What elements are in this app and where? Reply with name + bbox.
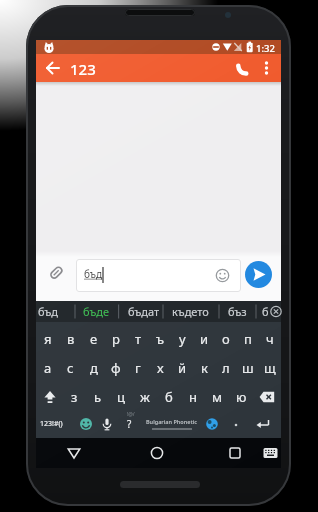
button[interactable]: [262, 443, 280, 463]
button[interactable]: р: [105, 324, 127, 353]
staticText: д: [90, 359, 98, 377]
button[interactable]: л: [215, 353, 237, 382]
button[interactable]: ю: [229, 382, 253, 411]
button[interactable]: а: [36, 353, 59, 382]
button[interactable]: [74, 411, 98, 437]
button[interactable]: ?: [117, 411, 141, 437]
staticText: п: [244, 330, 252, 348]
staticText: ?: [127, 417, 132, 431]
staticText: бъз: [228, 304, 247, 319]
staticText: ч: [266, 330, 274, 348]
staticText: ш: [242, 359, 254, 377]
staticText: я: [44, 330, 52, 348]
staticText: бъд: [38, 304, 58, 319]
button[interactable]: бъд: [34, 301, 61, 322]
staticText: ж: [140, 388, 150, 406]
staticText: е: [90, 330, 98, 348]
staticText: з: [71, 388, 78, 406]
button[interactable]: [255, 56, 277, 80]
staticText: ф: [111, 359, 121, 377]
button[interactable]: [223, 441, 247, 465]
button[interactable]: ш: [237, 353, 259, 382]
button[interactable]: е: [82, 324, 105, 353]
staticText: а: [44, 359, 52, 377]
staticText: л: [222, 359, 230, 377]
button[interactable]: [96, 411, 118, 437]
button[interactable]: х: [149, 353, 171, 382]
button[interactable]: и: [193, 324, 215, 353]
staticText: 123!#(): [40, 419, 63, 429]
staticText: г: [135, 359, 141, 377]
staticText: и: [200, 330, 209, 348]
button[interactable]: г: [127, 353, 149, 382]
button[interactable]: [41, 56, 65, 80]
button[interactable]: ъ: [149, 324, 171, 353]
button[interactable]: д: [82, 353, 105, 382]
button[interactable]: 123!#(): [36, 411, 66, 437]
staticText: б: [165, 388, 173, 406]
button[interactable]: [226, 411, 246, 437]
staticText: където: [172, 304, 209, 319]
staticText: бъд: [84, 267, 103, 281]
staticText: р: [112, 330, 120, 348]
staticText: ц: [117, 388, 125, 406]
button[interactable]: бъде: [79, 301, 113, 322]
button[interactable]: [253, 382, 281, 411]
button[interactable]: ж: [133, 382, 157, 411]
staticText: т: [135, 330, 142, 348]
button[interactable]: м: [205, 382, 229, 411]
staticText: х: [157, 359, 164, 377]
staticText: м: [212, 388, 222, 406]
button[interactable]: у: [171, 324, 193, 353]
button[interactable]: [46, 263, 66, 283]
button[interactable]: бъд: [76, 259, 241, 292]
button[interactable]: н: [181, 382, 205, 411]
staticText: о: [222, 330, 230, 348]
button[interactable]: ь: [86, 382, 109, 411]
button[interactable]: бъз: [224, 301, 251, 322]
button[interactable]: [200, 411, 224, 437]
staticText: ю: [236, 388, 247, 406]
staticText: й: [178, 359, 187, 377]
staticText: с: [67, 359, 74, 377]
button[interactable]: [250, 411, 276, 437]
button[interactable]: където: [167, 301, 213, 322]
button[interactable]: ч: [259, 324, 281, 353]
button[interactable]: я: [36, 324, 59, 353]
staticText: ъ: [156, 330, 165, 348]
button[interactable]: [62, 441, 86, 465]
staticText: 123: [70, 59, 96, 79]
staticText: ь: [94, 388, 102, 406]
staticText: Bulgarian Phonetic: [146, 418, 198, 425]
button[interactable]: [145, 441, 169, 465]
button[interactable]: щ: [259, 353, 281, 382]
staticText: б: [262, 304, 269, 319]
button[interactable]: [36, 382, 63, 411]
button[interactable]: бъдат: [124, 301, 164, 322]
button[interactable]: к: [193, 353, 215, 382]
button[interactable]: п: [237, 324, 259, 353]
button[interactable]: с: [59, 353, 82, 382]
staticText: н: [189, 388, 197, 406]
button[interactable]: з: [63, 382, 86, 411]
staticText: 1:32: [256, 42, 275, 55]
button[interactable]: [230, 56, 254, 80]
staticText: бъде: [83, 304, 110, 319]
button[interactable]: Bulgarian Phonetic: [141, 411, 202, 437]
button[interactable]: о: [215, 324, 237, 353]
button[interactable]: б: [258, 301, 272, 322]
staticText: !@/: [127, 411, 135, 418]
staticText: в: [67, 330, 75, 348]
button[interactable]: в: [59, 324, 82, 353]
button[interactable]: ф: [105, 353, 127, 382]
button[interactable]: ц: [109, 382, 133, 411]
staticText: щ: [264, 359, 276, 377]
staticText: у: [179, 330, 186, 348]
button[interactable]: й: [171, 353, 193, 382]
staticText: к: [201, 359, 208, 377]
staticText: бъдат: [128, 304, 160, 319]
button[interactable]: б: [157, 382, 181, 411]
button[interactable]: [245, 261, 272, 288]
button[interactable]: т: [127, 324, 149, 353]
